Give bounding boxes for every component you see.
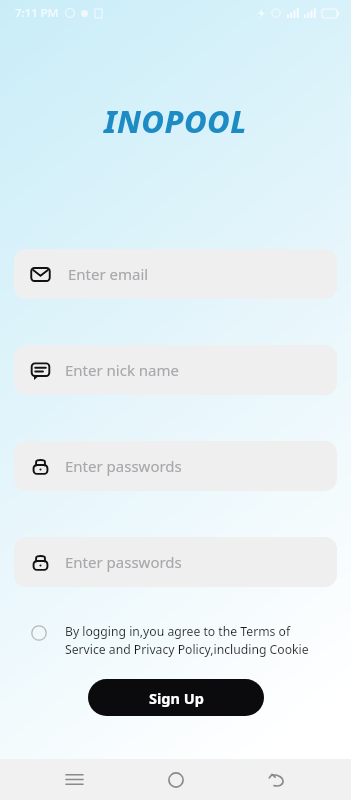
staticText: By logging in,you agree to the Terms of … [65,623,309,657]
staticText: 7:11 PM [15,5,59,21]
button[interactable]: Back [249,759,305,800]
button[interactable]: Enter passwords [14,441,337,491]
staticText: Enter passwords [65,552,182,572]
button[interactable]: Sign Up [88,679,264,716]
staticText: Sign Up [149,688,204,708]
button[interactable]: Enter email [14,249,337,299]
button[interactable]: Enter passwords [14,537,337,587]
button[interactable]: Enter nick name [14,345,337,395]
staticText: Enter passwords [65,456,182,476]
button[interactable]: Recent apps [46,759,102,800]
button[interactable]: By logging in,you agree to the Terms of … [0,619,351,661]
staticText: Enter email [68,264,149,284]
button[interactable]: Home [148,759,204,800]
staticText: Enter nick name [65,360,180,380]
staticText: INOPOOL [104,100,247,142]
